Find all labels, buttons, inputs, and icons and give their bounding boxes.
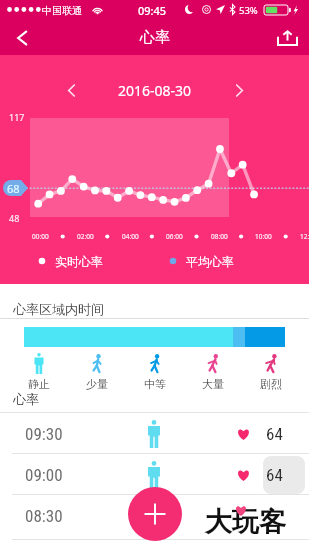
staticText: 09:00 xyxy=(25,465,63,485)
staticText: 00:00 xyxy=(32,232,49,241)
button[interactable]: 08:30 xyxy=(0,495,309,536)
button[interactable]: 剧烈 xyxy=(242,353,300,391)
button[interactable]: Add measurement xyxy=(128,487,182,541)
staticText: 64 xyxy=(266,424,283,444)
button[interactable]: 少量 xyxy=(68,353,126,391)
staticText: 10:00 xyxy=(255,232,272,241)
staticText: 08:00 xyxy=(211,232,228,241)
staticText: 53% xyxy=(239,4,258,17)
button[interactable]: Next day xyxy=(224,78,254,102)
staticText: 中国联通 xyxy=(42,4,82,17)
staticText: 08:30 xyxy=(25,506,63,526)
staticText: 剧烈 xyxy=(260,377,282,391)
button[interactable]: Back xyxy=(0,20,46,55)
staticText: 09:45 xyxy=(138,3,167,18)
staticText: 64 xyxy=(266,465,283,485)
button[interactable]: 09:30 xyxy=(0,413,309,454)
staticText: 实时心率 xyxy=(55,254,103,268)
staticText: 大玩客 xyxy=(205,505,286,539)
staticText: 06:00 xyxy=(166,232,183,241)
staticText: 12:00 xyxy=(300,232,309,241)
button[interactable]: 静止 xyxy=(9,353,68,391)
staticText: 心率区域内时间 xyxy=(13,301,104,317)
staticText: 117 xyxy=(9,111,25,123)
staticText: 少量 xyxy=(86,377,108,391)
staticText: 大量 xyxy=(202,377,224,391)
button[interactable]: 中等 xyxy=(126,353,184,391)
button[interactable]: Share xyxy=(263,20,309,55)
staticText: 静止 xyxy=(28,377,50,391)
button[interactable]: 09:00 xyxy=(0,454,309,495)
staticText: 09:30 xyxy=(25,424,63,444)
button[interactable]: 大量 xyxy=(184,353,242,391)
staticText: 48 xyxy=(9,212,20,224)
staticText: 心率 xyxy=(13,391,39,407)
staticText: 2016-08-30 xyxy=(118,81,192,100)
staticText: 04:00 xyxy=(122,232,139,241)
staticText: 68 xyxy=(7,181,20,196)
staticText: 02:00 xyxy=(77,232,94,241)
staticText: 中等 xyxy=(144,377,166,391)
staticText: 平均心率 xyxy=(186,254,234,268)
button[interactable]: Previous day xyxy=(56,78,86,102)
staticText: 心率 xyxy=(140,28,170,47)
